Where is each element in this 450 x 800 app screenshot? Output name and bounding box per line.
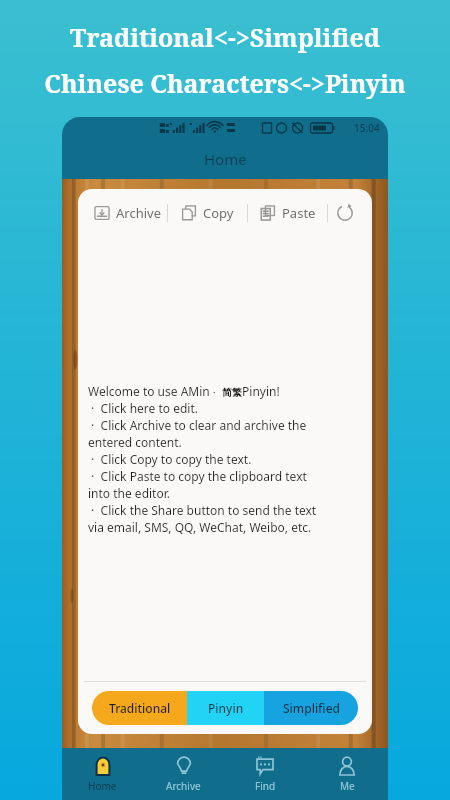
button[interactable]: Refresh [328, 196, 362, 230]
staticText: Paste [282, 204, 316, 222]
staticText: Find [255, 779, 276, 793]
staticText: Chinese Characters<->Pinyin [44, 66, 406, 100]
staticText: 15:04 [354, 121, 380, 135]
staticText: Welcome to use AMin · 简繁Pinyin! · Click … [88, 383, 317, 535]
staticText: Traditional<->Simplified [70, 20, 380, 54]
button[interactable]: Home [62, 748, 143, 800]
staticText: Traditional [109, 700, 171, 716]
button[interactable]: Me [306, 748, 388, 800]
button[interactable]: Archive [88, 189, 167, 237]
staticText: Me [340, 779, 355, 793]
staticText: Pinyin [208, 700, 244, 716]
button[interactable]: Find [224, 748, 306, 800]
staticText: Home [204, 149, 247, 169]
button[interactable]: Pinyin [187, 691, 264, 725]
button[interactable]: Traditional [92, 691, 187, 725]
button[interactable]: Simplified [264, 691, 358, 725]
button[interactable]: Paste [248, 189, 327, 237]
button[interactable]: Welcome to use AMin · 简繁Pinyin! · Click … [78, 383, 372, 535]
staticText: Simplified [283, 700, 340, 716]
staticText: Home [88, 779, 117, 793]
staticText: Archive [116, 204, 161, 222]
staticText: Copy [203, 204, 234, 222]
button[interactable]: Archive [143, 748, 224, 800]
staticText: Archive [166, 779, 201, 793]
button[interactable]: Copy [168, 189, 247, 237]
